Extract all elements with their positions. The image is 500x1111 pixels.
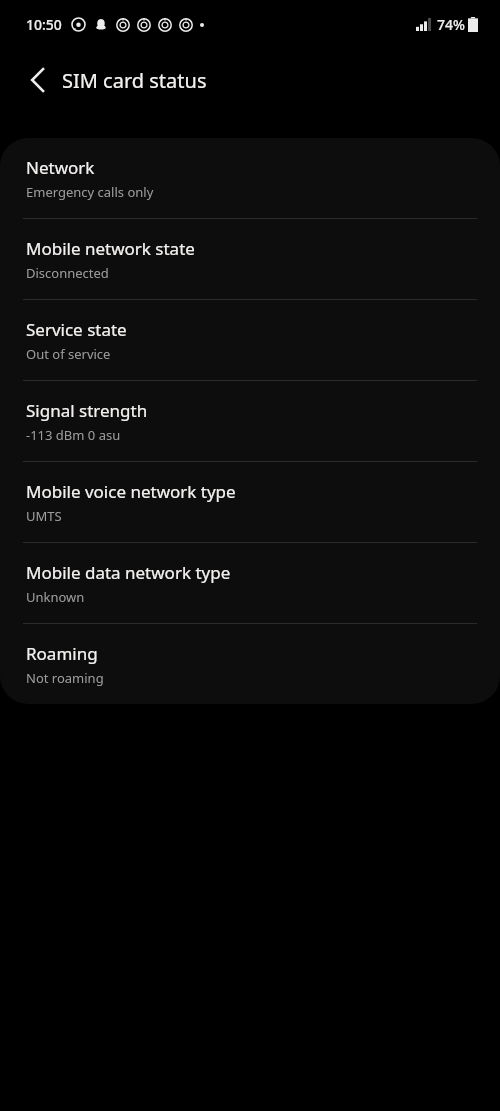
button[interactable]: Back <box>18 60 58 100</box>
staticText: SIM card status <box>62 67 207 94</box>
staticText: 74% <box>437 15 465 34</box>
staticText: Network <box>26 156 95 179</box>
staticText: Not roaming <box>26 669 104 687</box>
staticText: Roaming <box>26 642 98 665</box>
button[interactable]: Mobile voice network type <box>0 462 500 542</box>
staticText: Signal strength <box>26 399 148 422</box>
staticText: Disconnected <box>26 264 109 282</box>
staticText: Mobile network state <box>26 237 195 260</box>
staticText: 10:50 <box>26 15 62 34</box>
staticText: Mobile data network type <box>26 561 231 584</box>
staticText: -113 dBm 0 asu <box>26 426 121 444</box>
button[interactable]: Network <box>0 138 500 218</box>
button[interactable]: Service state <box>0 300 500 380</box>
button[interactable]: Mobile network state <box>0 219 500 299</box>
staticText: Out of service <box>26 345 111 363</box>
staticText: Mobile voice network type <box>26 480 236 503</box>
button[interactable]: Signal strength <box>0 381 500 461</box>
staticText: UMTS <box>26 507 62 525</box>
button[interactable]: Roaming <box>0 624 500 704</box>
button[interactable]: Mobile data network type <box>0 543 500 623</box>
staticText: Unknown <box>26 588 85 606</box>
staticText: Service state <box>26 318 127 341</box>
staticText: Emergency calls only <box>26 183 154 201</box>
